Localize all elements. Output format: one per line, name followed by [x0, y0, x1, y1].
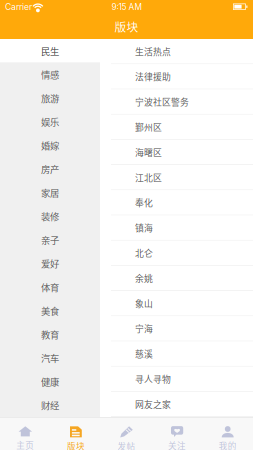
- staticText: Carrier: [5, 2, 32, 12]
- staticText: 关注: [168, 439, 186, 450]
- button[interactable]: 主页: [0, 417, 51, 450]
- staticText: 网友之家: [135, 398, 171, 410]
- button[interactable]: 美食: [0, 299, 100, 322]
- button[interactable]: 版块: [51, 417, 101, 450]
- staticText: 慈溪: [135, 347, 153, 360]
- staticText: 体育: [41, 280, 59, 294]
- button[interactable]: 我的: [202, 417, 253, 450]
- staticText: 生活热点: [135, 45, 171, 58]
- staticText: 9:15 AM: [111, 2, 141, 12]
- staticText: 版块: [114, 18, 138, 35]
- staticText: 主页: [16, 439, 34, 450]
- staticText: 江北区: [135, 171, 162, 184]
- staticText: 宁海: [135, 322, 153, 335]
- staticText: 健康: [41, 375, 59, 388]
- staticText: 美食: [41, 304, 59, 317]
- button[interactable]: 镇海: [100, 215, 253, 241]
- button[interactable]: 亲子: [0, 228, 100, 252]
- staticText: 法律援助: [135, 70, 171, 83]
- button[interactable]: 寻人寻物: [100, 367, 253, 392]
- staticText: 象山: [135, 297, 153, 310]
- button[interactable]: 情感: [0, 63, 100, 86]
- staticText: 亲子: [41, 233, 59, 247]
- staticText: 婚嫁: [41, 139, 59, 152]
- button[interactable]: 北仑: [100, 241, 253, 266]
- button[interactable]: 汽车: [0, 346, 100, 370]
- button[interactable]: 装修: [0, 204, 100, 228]
- button[interactable]: 生活热点: [100, 39, 253, 64]
- button[interactable]: 教育: [0, 323, 100, 346]
- staticText: 余姚: [135, 272, 153, 284]
- button[interactable]: 关注: [152, 417, 202, 450]
- button[interactable]: 慈溪: [100, 341, 253, 367]
- staticText: 奉化: [135, 196, 153, 209]
- button[interactable]: 网友之家: [100, 392, 253, 417]
- button[interactable]: 家居: [0, 181, 100, 204]
- button[interactable]: 爱好: [0, 252, 100, 275]
- button[interactable]: 余姚: [100, 266, 253, 291]
- button[interactable]: 江北区: [100, 165, 253, 190]
- staticText: 民生: [41, 44, 59, 58]
- button[interactable]: 鄞州区: [100, 115, 253, 140]
- staticText: 镇海: [135, 221, 153, 234]
- button[interactable]: 发帖: [101, 417, 152, 450]
- staticText: 财经: [41, 398, 59, 412]
- button[interactable]: 宁海: [100, 316, 253, 341]
- button[interactable]: 象山: [100, 291, 253, 316]
- button[interactable]: 娱乐: [0, 110, 100, 133]
- button[interactable]: 法律援助: [100, 64, 253, 89]
- staticText: 发帖: [117, 440, 135, 450]
- staticText: 娱乐: [41, 115, 59, 128]
- staticText: 房产: [41, 162, 59, 176]
- button[interactable]: 奉化: [100, 190, 253, 215]
- button[interactable]: 健康: [0, 370, 100, 393]
- staticText: 爱好: [41, 257, 59, 270]
- staticText: 海曙区: [135, 146, 162, 158]
- button[interactable]: 房产: [0, 157, 100, 181]
- staticText: 情感: [41, 68, 59, 81]
- staticText: 旅游: [41, 91, 59, 105]
- staticText: 版块: [67, 440, 85, 450]
- button[interactable]: 海曙区: [100, 140, 253, 165]
- button[interactable]: 婚嫁: [0, 133, 100, 157]
- button[interactable]: 体育: [0, 275, 100, 299]
- button[interactable]: 宁波社区警务: [100, 89, 253, 115]
- staticText: 北仑: [135, 246, 153, 259]
- staticText: 鄞州区: [135, 120, 162, 133]
- staticText: 教育: [41, 328, 59, 341]
- staticText: 宁波社区警务: [135, 95, 189, 108]
- staticText: 装修: [41, 209, 59, 223]
- staticText: 汽车: [41, 351, 59, 365]
- staticText: 家居: [41, 186, 59, 199]
- button[interactable]: 民生: [0, 39, 100, 63]
- staticText: 寻人寻物: [135, 372, 171, 385]
- button[interactable]: 旅游: [0, 86, 100, 110]
- button[interactable]: 财经: [0, 393, 100, 417]
- staticText: 我的: [219, 440, 237, 450]
